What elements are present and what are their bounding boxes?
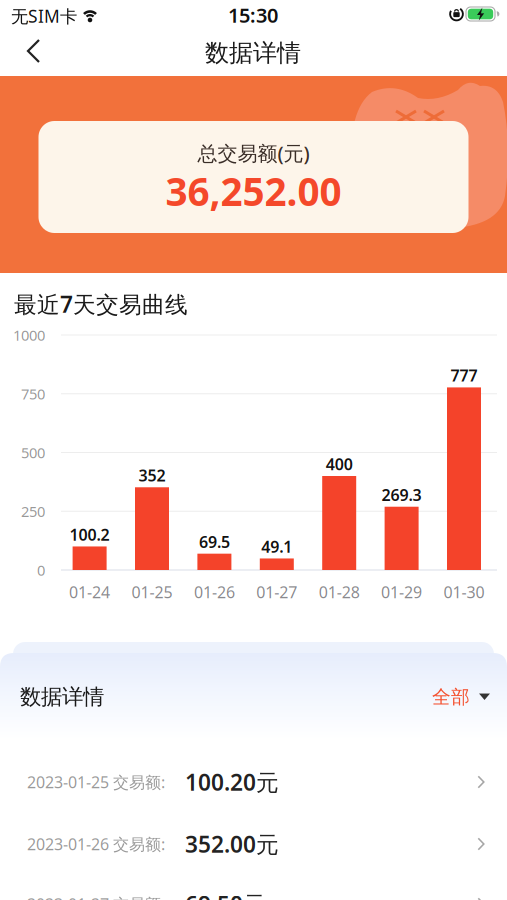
staticText: 352.00元 bbox=[185, 829, 279, 859]
staticText: 100.2 bbox=[70, 524, 110, 545]
staticText: 0 bbox=[37, 560, 45, 580]
staticText: 69.50元 bbox=[185, 889, 266, 900]
staticText: 总交易额(元) bbox=[197, 140, 309, 166]
button[interactable]: 2023-01-27 交易额: bbox=[0, 882, 507, 900]
staticText: 01-26 bbox=[194, 581, 235, 603]
staticText: 69.5 bbox=[199, 531, 230, 552]
staticText: 全部 bbox=[432, 685, 470, 708]
staticText: 01-24 bbox=[69, 581, 110, 603]
staticText: 1000 bbox=[13, 325, 45, 345]
button[interactable]: 全部 bbox=[432, 685, 490, 708]
staticText: 2023-01-27 交易额: bbox=[27, 893, 165, 900]
staticText: 15:30 bbox=[228, 2, 278, 28]
staticText: 36,252.00 bbox=[165, 165, 341, 217]
staticText: 269.3 bbox=[382, 484, 422, 505]
staticText: 352 bbox=[138, 465, 165, 486]
staticText: 777 bbox=[450, 365, 477, 386]
button[interactable]: Back bbox=[12, 33, 56, 69]
button[interactable]: 2023-01-26 交易额: bbox=[0, 822, 507, 866]
staticText: 2023-01-25 交易额: bbox=[27, 771, 165, 793]
button[interactable]: 2023-01-25 交易额: bbox=[0, 760, 507, 804]
staticText: 01-27 bbox=[256, 581, 297, 603]
staticText: 250 bbox=[21, 501, 45, 521]
staticText: 数据详情 bbox=[205, 38, 301, 68]
staticText: 01-29 bbox=[381, 581, 422, 603]
staticText: 49.1 bbox=[261, 536, 292, 557]
staticText: 100.20元 bbox=[185, 767, 279, 797]
staticText: 400 bbox=[326, 453, 353, 475]
staticText: 01-28 bbox=[319, 581, 360, 603]
staticText: 01-25 bbox=[131, 581, 172, 603]
staticText: 无SIM卡 bbox=[11, 4, 77, 27]
staticText: 500 bbox=[21, 443, 45, 462]
staticText: 750 bbox=[21, 384, 45, 403]
staticText: 2023-01-26 交易额: bbox=[27, 833, 165, 855]
staticText: 数据详情 bbox=[20, 684, 104, 710]
staticText: 最近7天交易曲线 bbox=[14, 289, 188, 319]
staticText: 01-30 bbox=[443, 581, 484, 603]
